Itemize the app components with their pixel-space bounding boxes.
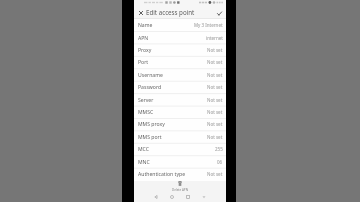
staticText: MCC [138,146,149,153]
staticText: Not set [207,59,223,65]
button[interactable]: APN [134,32,226,44]
button[interactable]: Username [134,69,226,81]
staticText: Not set [207,72,223,78]
staticText: Proxy [138,47,152,54]
staticText: internet [206,35,223,41]
button[interactable]: MMS port [134,131,226,143]
button[interactable]: Close without saving [137,9,145,17]
staticText: Port [138,59,149,66]
staticText: Not set [207,134,223,140]
staticText: MMSC [138,109,154,116]
button[interactable]: More options [196,191,212,202]
staticText: Password [138,84,162,91]
button[interactable]: Back [148,191,164,202]
button[interactable]: Authentication type [134,168,226,180]
button[interactable]: Delete APN [134,181,226,191]
staticText: 255 [215,146,223,152]
staticText: Not set [207,84,223,90]
staticText: Delete APN [172,188,188,191]
button[interactable]: MNC [134,156,226,168]
staticText: Not set [207,109,223,115]
staticText: Server [138,97,154,104]
button[interactable]: Password [134,81,226,93]
staticText: 06 [217,159,223,165]
staticText: Edit access point [146,8,195,16]
staticText: APN [138,35,149,42]
staticText: MMS port [138,134,162,141]
button[interactable]: MCC [134,143,226,155]
button[interactable]: MMS proxy [134,118,226,130]
staticText: My 3 Internet [194,22,223,28]
button[interactable]: Save access point [215,9,223,17]
staticText: Not set [207,121,223,127]
staticText: MNC [138,159,150,166]
staticText: Not set [207,171,223,177]
button[interactable]: Proxy [134,44,226,56]
staticText: Not set [207,97,223,103]
staticText: Username [138,72,163,79]
button[interactable]: Port [134,56,226,68]
staticText: Not set [207,47,223,53]
button[interactable]: Recent apps [180,191,196,202]
staticText: MMS proxy [138,121,165,128]
button[interactable]: MMSC [134,106,226,118]
button[interactable]: Home [164,191,180,202]
staticText: Authentication type [138,171,186,178]
button[interactable]: Name [134,19,226,31]
staticText: Name [138,22,153,29]
button[interactable]: Server [134,94,226,106]
